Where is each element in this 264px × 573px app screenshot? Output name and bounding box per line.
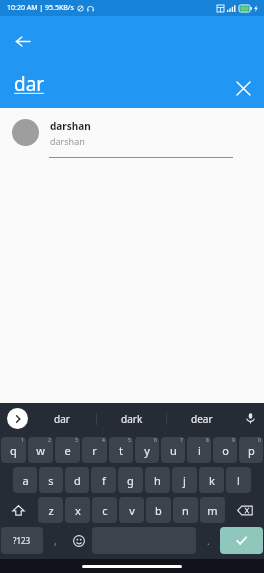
button[interactable]: w bbox=[28, 437, 53, 463]
button[interactable]: a bbox=[13, 467, 37, 493]
staticText: c bbox=[102, 503, 108, 518]
staticText: r bbox=[92, 443, 97, 458]
button[interactable]: Voice input bbox=[236, 403, 264, 434]
button[interactable]: y bbox=[135, 437, 159, 463]
button[interactable]: r bbox=[82, 437, 107, 463]
button[interactable]: f bbox=[91, 467, 116, 493]
staticText: e bbox=[64, 443, 71, 458]
button[interactable]: Period bbox=[198, 527, 218, 554]
staticText: l bbox=[237, 473, 240, 488]
staticText: , bbox=[54, 534, 57, 548]
staticText: 0 bbox=[258, 437, 261, 444]
button[interactable]: Shift bbox=[1, 497, 36, 523]
staticText: g bbox=[127, 473, 134, 488]
button[interactable]: h bbox=[145, 467, 170, 493]
staticText: s bbox=[48, 473, 54, 488]
staticText: u bbox=[170, 443, 177, 458]
button[interactable]: Back bbox=[5, 24, 39, 58]
staticText: z bbox=[48, 503, 54, 518]
button[interactable]: dark bbox=[97, 403, 166, 434]
staticText: o bbox=[222, 443, 229, 458]
staticText: i bbox=[198, 443, 201, 458]
button[interactable]: v bbox=[119, 497, 144, 523]
staticText: 2 bbox=[48, 437, 51, 444]
button[interactable]: ?123 bbox=[1, 527, 43, 554]
button[interactable]: c bbox=[92, 497, 117, 523]
staticText: darshan bbox=[50, 135, 85, 147]
staticText: p bbox=[248, 443, 255, 458]
staticText: t bbox=[119, 443, 123, 458]
button[interactable]: q bbox=[1, 437, 26, 463]
staticText: m bbox=[207, 503, 218, 518]
button[interactable]: Comma bbox=[45, 527, 65, 554]
button[interactable]: b bbox=[146, 497, 171, 523]
button[interactable]: o bbox=[213, 437, 237, 463]
staticText: 5 bbox=[128, 437, 131, 444]
button[interactable]: d bbox=[65, 467, 89, 493]
staticText: x bbox=[75, 503, 81, 518]
button[interactable]: g bbox=[118, 467, 143, 493]
button[interactable]: Emoji bbox=[67, 527, 90, 554]
button[interactable]: e bbox=[55, 437, 80, 463]
staticText: q bbox=[10, 443, 17, 458]
staticText: 3 bbox=[75, 437, 78, 444]
button[interactable]: darshan bbox=[0, 108, 264, 157]
button[interactable]: l bbox=[226, 467, 251, 493]
staticText: j bbox=[183, 473, 186, 488]
button[interactable]: p bbox=[239, 437, 263, 463]
staticText: a bbox=[22, 473, 29, 488]
staticText: . bbox=[207, 534, 210, 548]
staticText: dar bbox=[14, 71, 45, 97]
staticText: b bbox=[155, 503, 162, 518]
button[interactable]: dear bbox=[167, 403, 236, 434]
button[interactable]: k bbox=[199, 467, 224, 493]
staticText: darshan bbox=[50, 119, 91, 133]
button[interactable]: dar bbox=[28, 403, 96, 434]
button[interactable]: i bbox=[187, 437, 211, 463]
button[interactable]: n bbox=[173, 497, 198, 523]
button[interactable]: Clear search bbox=[228, 73, 258, 103]
staticText: 1 bbox=[21, 437, 24, 444]
button[interactable]: u bbox=[161, 437, 185, 463]
button[interactable]: t bbox=[109, 437, 133, 463]
staticText: f bbox=[102, 473, 106, 488]
staticText: 4 bbox=[102, 437, 105, 444]
staticText: d bbox=[74, 473, 81, 488]
staticText: h bbox=[154, 473, 161, 488]
button[interactable]: Backspace bbox=[227, 497, 263, 523]
button[interactable]: m bbox=[200, 497, 225, 523]
button[interactable]: Enter bbox=[220, 527, 263, 554]
staticText: dark bbox=[121, 412, 143, 426]
staticText: k bbox=[209, 473, 215, 488]
staticText: v bbox=[129, 503, 135, 518]
staticText: 10:20 AM | 95.5KB/s bbox=[7, 3, 74, 13]
button[interactable]: j bbox=[172, 467, 197, 493]
staticText: dar bbox=[54, 412, 70, 426]
staticText: 9 bbox=[232, 437, 235, 444]
staticText: 7 bbox=[180, 437, 183, 444]
staticText: y bbox=[144, 443, 150, 458]
button[interactable]: x bbox=[65, 497, 90, 523]
staticText: ?123 bbox=[13, 535, 31, 546]
button[interactable]: More suggestions bbox=[7, 408, 28, 429]
staticText: n bbox=[182, 503, 189, 518]
staticText: dear bbox=[191, 412, 213, 426]
button[interactable]: s bbox=[39, 467, 63, 493]
staticText: w bbox=[36, 443, 45, 458]
staticText: 8 bbox=[206, 437, 209, 444]
staticText: 6 bbox=[154, 437, 157, 444]
button[interactable]: z bbox=[38, 497, 63, 523]
